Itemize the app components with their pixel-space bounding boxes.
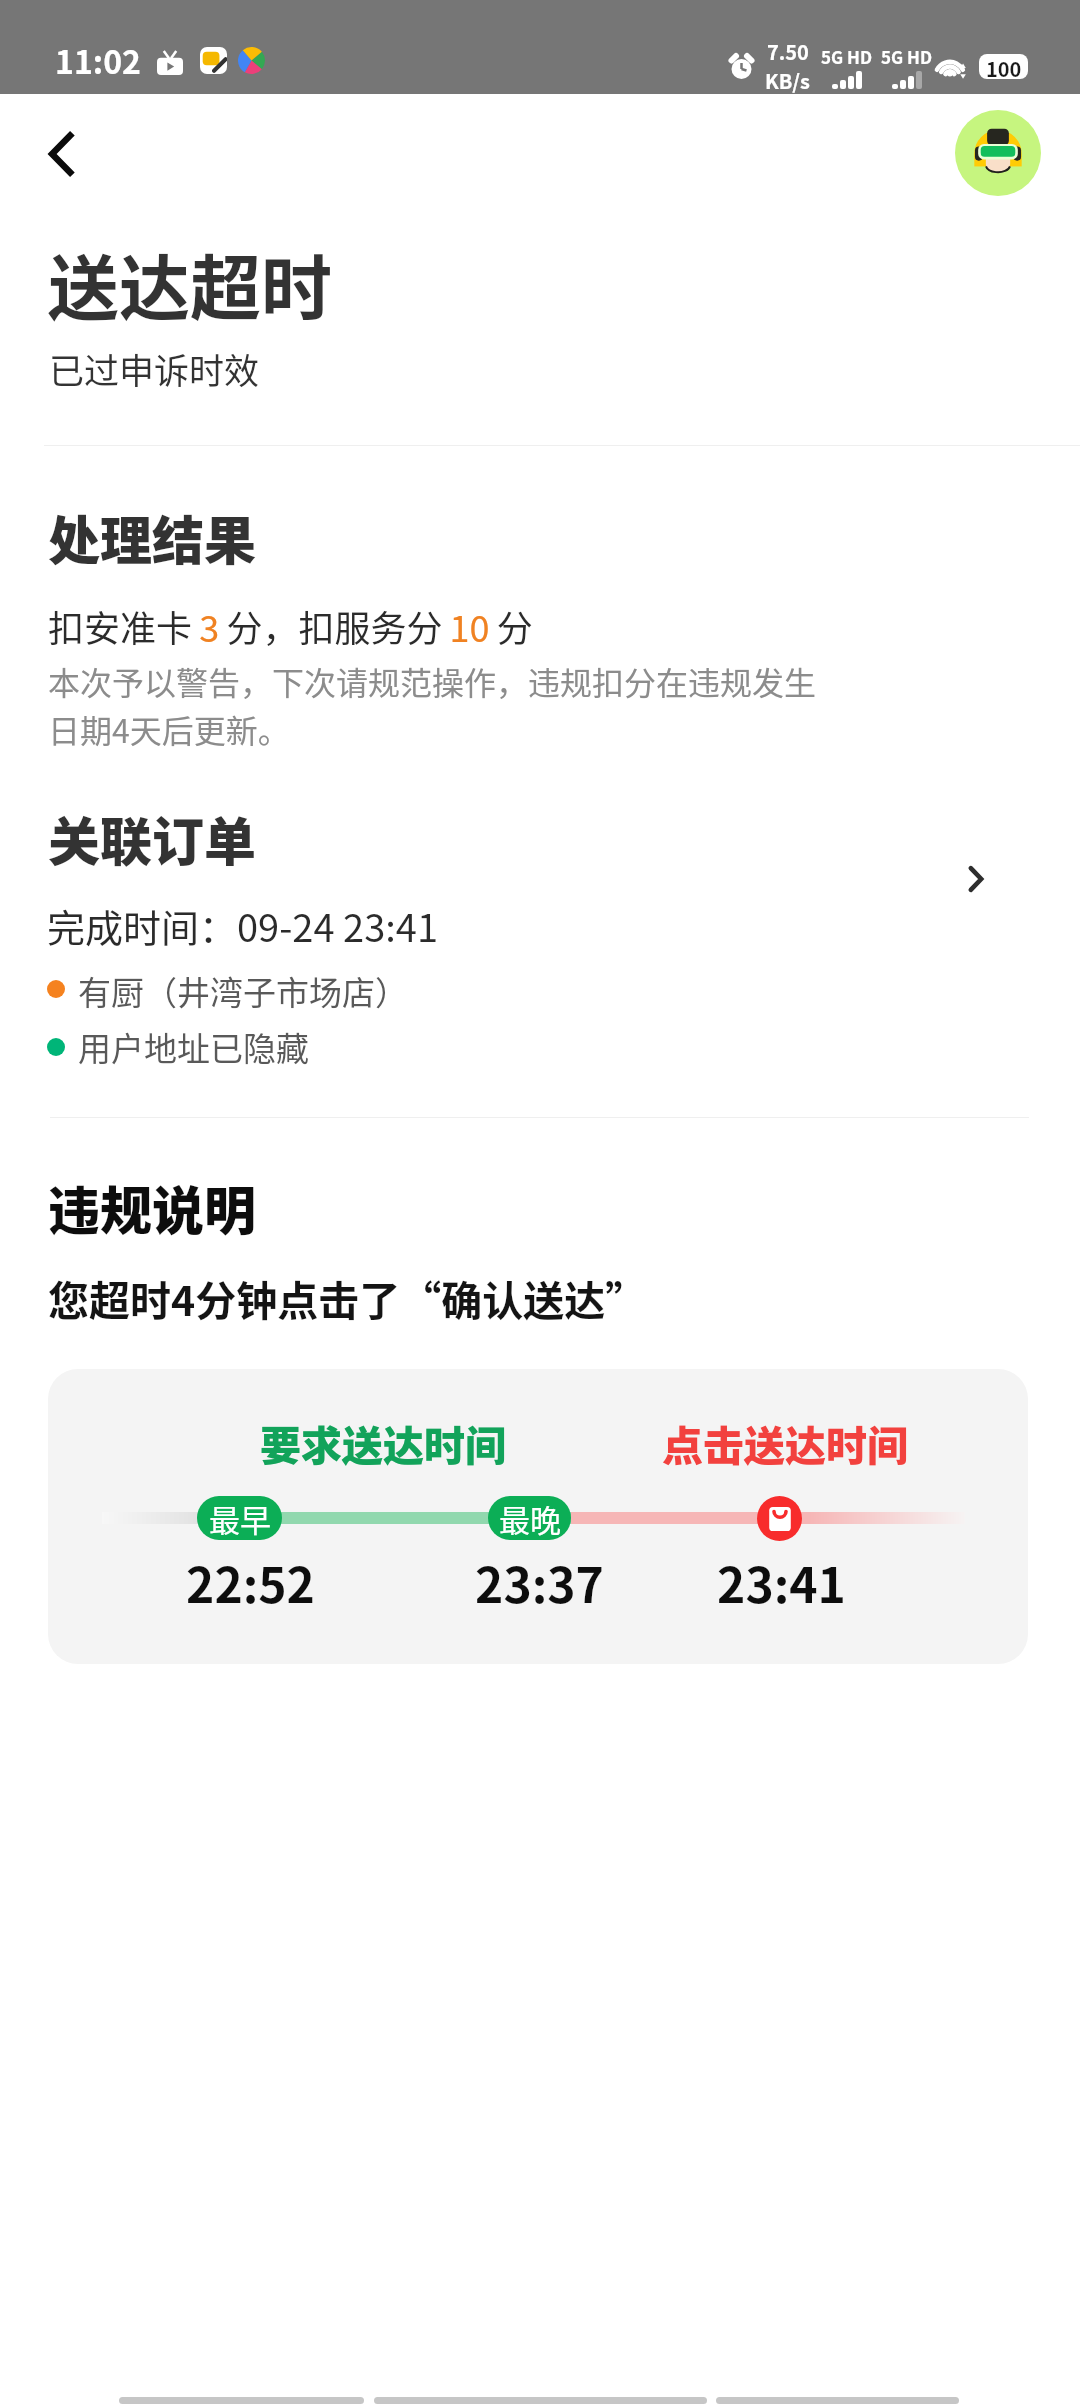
- staticText: 7.50: [767, 37, 809, 66]
- staticText: 送达超时: [48, 232, 333, 335]
- staticText: 处理结果: [48, 500, 257, 575]
- staticText: 已过申诉时效: [49, 343, 260, 394]
- button[interactable]: 个人中心: [955, 110, 1041, 196]
- staticText: 100: [986, 54, 1022, 79]
- staticText: 要求送达时间: [260, 1413, 506, 1472]
- staticText: 11:02: [55, 37, 141, 83]
- staticText: 22:52: [186, 1547, 315, 1617]
- staticText: 最早: [209, 1496, 271, 1540]
- staticText: 有厨（井湾子市场店）: [78, 967, 408, 1015]
- staticText: 完成时间：09-24 23:41: [47, 898, 438, 953]
- staticText: 用户地址已隐藏: [78, 1023, 309, 1071]
- button[interactable]: 返回: [25, 119, 95, 189]
- staticText: KB/s: [765, 66, 810, 95]
- staticText: 扣安准卡 3 分，扣服务分 10 分: [48, 600, 533, 652]
- staticText: 23:37: [475, 1547, 604, 1617]
- staticText: 5G HD: [881, 44, 933, 69]
- button[interactable]: 查看订单详情: [941, 844, 1011, 914]
- button[interactable]: [0, 790, 1080, 1085]
- staticText: 点击送达时间: [662, 1413, 908, 1472]
- staticText: 违规说明: [48, 1170, 257, 1245]
- staticText: 您超时4分钟点击了“确认送达”: [48, 1268, 647, 1327]
- staticText: 最晚: [499, 1496, 561, 1540]
- staticText: 本次予以警告，下次请规范操作，违规扣分在违规发生 日期4天后更新。: [48, 658, 817, 753]
- staticText: 关联订单: [48, 801, 257, 876]
- staticText: 5G HD: [821, 44, 873, 69]
- staticText: 23:41: [717, 1547, 846, 1617]
